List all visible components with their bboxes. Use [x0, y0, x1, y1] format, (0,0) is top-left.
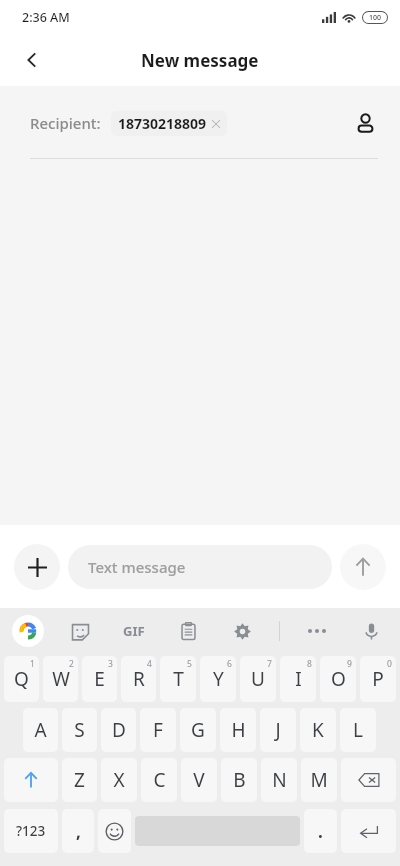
- staticText: R: [133, 666, 145, 692]
- staticText: A: [34, 717, 47, 743]
- staticText: ,: [76, 820, 81, 843]
- staticText: K: [312, 717, 324, 743]
- button[interactable]: Clipboard: [171, 614, 205, 648]
- button[interactable]: U: [240, 656, 276, 702]
- staticText: J: [275, 717, 281, 743]
- staticText: S: [74, 717, 85, 743]
- staticText: 2:36 AM: [22, 9, 70, 26]
- staticText: 100: [369, 13, 382, 23]
- button[interactable]: Google: [12, 615, 44, 647]
- staticText: Z: [74, 767, 85, 793]
- staticText: M: [310, 767, 328, 793]
- button[interactable]: B: [221, 758, 257, 802]
- staticText: T: [173, 666, 184, 692]
- button[interactable]: F: [140, 708, 176, 752]
- staticText: 6: [227, 658, 232, 670]
- button[interactable]: ?123: [4, 809, 58, 853]
- button[interactable]: S: [62, 708, 97, 752]
- staticText: GIF: [123, 622, 145, 640]
- staticText: G: [191, 717, 205, 743]
- button[interactable]: Add attachment: [14, 544, 60, 590]
- button[interactable]: Stickers: [63, 614, 97, 648]
- button[interactable]: Back: [10, 38, 54, 82]
- button[interactable]: GIF: [117, 614, 151, 648]
- staticText: W: [52, 666, 70, 692]
- staticText: 5: [187, 658, 192, 670]
- button[interactable]: .: [304, 809, 337, 853]
- staticText: New message: [141, 49, 259, 72]
- button[interactable]: N: [261, 758, 297, 802]
- staticText: 1: [30, 658, 35, 670]
- button[interactable]: V: [181, 758, 217, 802]
- staticText: 0: [387, 658, 392, 670]
- button[interactable]: E: [82, 656, 117, 702]
- staticText: 18730218809: [118, 114, 207, 133]
- button[interactable]: O: [320, 656, 356, 702]
- staticText: F: [153, 717, 163, 743]
- button[interactable]: C: [141, 758, 177, 802]
- button[interactable]: R: [121, 656, 156, 702]
- staticText: 2: [69, 658, 74, 670]
- staticText: 3: [108, 658, 113, 670]
- staticText: 8: [307, 658, 312, 670]
- staticText: V: [193, 767, 205, 793]
- button[interactable]: Add contact: [344, 102, 386, 144]
- button[interactable]: W: [43, 656, 78, 702]
- staticText: 4: [147, 658, 152, 670]
- staticText: U: [251, 666, 265, 692]
- button[interactable]: Settings: [225, 614, 259, 648]
- staticText: E: [94, 666, 105, 692]
- staticText: 9: [347, 658, 352, 670]
- button[interactable]: Send: [340, 544, 386, 590]
- staticText: N: [272, 767, 287, 793]
- button[interactable]: J: [260, 708, 296, 752]
- button[interactable]: Y: [200, 656, 236, 702]
- button[interactable]: I: [280, 656, 316, 702]
- staticText: .: [318, 820, 323, 843]
- button[interactable]: H: [220, 708, 256, 752]
- button[interactable]: T: [160, 656, 196, 702]
- staticText: C: [153, 767, 166, 793]
- button[interactable]: P: [360, 656, 396, 702]
- button[interactable]: Voice input: [354, 614, 388, 648]
- button[interactable]: D: [101, 708, 136, 752]
- button[interactable]: More options: [300, 614, 334, 648]
- staticText: D: [112, 717, 126, 743]
- button[interactable]: K: [300, 708, 336, 752]
- staticText: O: [331, 666, 346, 692]
- button[interactable]: A: [23, 708, 58, 752]
- button[interactable]: Q: [4, 656, 39, 702]
- staticText: Q: [14, 666, 29, 692]
- button[interactable]: Z: [62, 758, 97, 802]
- button[interactable]: Shift: [4, 758, 58, 802]
- button[interactable]: Text message: [68, 545, 332, 589]
- button[interactable]: L: [340, 708, 376, 752]
- staticText: H: [231, 717, 246, 743]
- staticText: X: [113, 767, 125, 793]
- button[interactable]: ,: [62, 809, 94, 853]
- staticText: 7: [267, 658, 272, 670]
- staticText: B: [233, 767, 246, 793]
- staticText: ?123: [16, 822, 46, 840]
- staticText: Text message: [88, 557, 186, 577]
- staticText: L: [353, 717, 363, 743]
- button[interactable]: G: [180, 708, 216, 752]
- button[interactable]: M: [301, 758, 337, 802]
- button[interactable]: Backspace: [341, 758, 396, 802]
- staticText: I: [295, 666, 302, 692]
- staticText: Recipient:: [30, 113, 101, 133]
- staticText: P: [372, 666, 384, 692]
- button[interactable]: Emoji: [98, 809, 131, 853]
- button[interactable]: 18730218809: [111, 111, 227, 136]
- button[interactable]: Enter: [341, 809, 396, 853]
- button[interactable]: X: [101, 758, 137, 802]
- staticText: Y: [213, 666, 224, 692]
